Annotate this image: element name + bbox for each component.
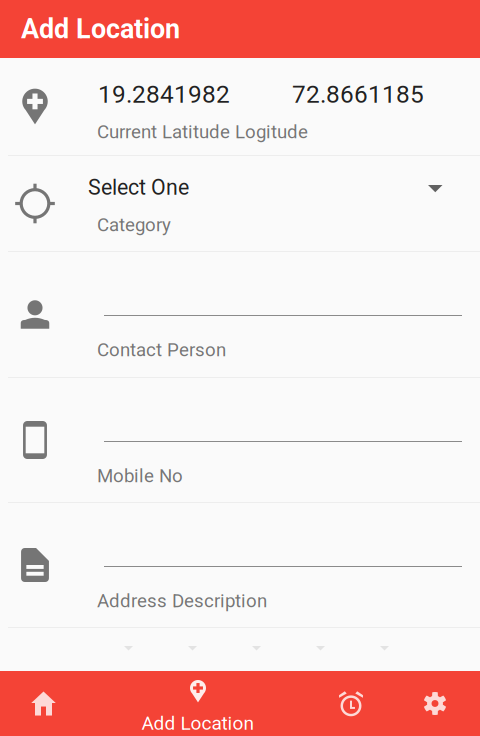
staticText: Current Latitude Logitude xyxy=(97,121,308,143)
staticText: Category xyxy=(97,214,171,236)
staticText: Select One xyxy=(88,175,189,200)
button[interactable]: Add Location xyxy=(118,671,278,736)
button[interactable]: Home xyxy=(0,671,91,736)
staticText: 72.8661185 xyxy=(292,80,424,109)
staticText: Add Location xyxy=(21,13,180,45)
staticText: Add Location xyxy=(141,712,254,734)
staticText: 19.2841982 xyxy=(98,80,230,109)
staticText: Contact Person xyxy=(97,339,226,361)
staticText: Address Description xyxy=(97,590,267,612)
staticText: Mobile No xyxy=(97,465,183,487)
button[interactable]: Settings xyxy=(390,671,480,736)
button[interactable]: Reminders xyxy=(306,671,396,736)
